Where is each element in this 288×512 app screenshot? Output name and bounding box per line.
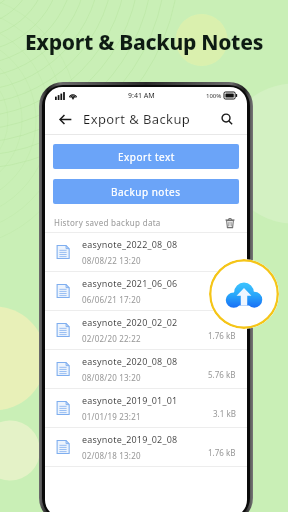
staticText: 02/08/18 13:20 [82,450,141,461]
button[interactable]: easynote_2019_01_01 [45,389,247,427]
staticText: 08/08/20 13:20 [82,372,141,383]
button[interactable]: Back [55,109,75,129]
button[interactable]: easynote_2020_08_08 [45,350,247,388]
staticText: 5.76 kB [208,369,236,380]
button[interactable]: easynote_2020_02_02 [45,311,247,349]
button[interactable]: Export text [53,144,239,169]
staticText: easynote_2020_02_02 [82,316,178,328]
staticText: 06/06/21 17:20 [82,294,141,305]
staticText: Export text [118,150,175,164]
button[interactable]: Search [217,109,237,129]
staticText: History saved backup data [54,217,161,228]
button[interactable]: Backup notes [53,179,239,204]
button[interactable]: Backup to cloud [209,259,279,329]
staticText: easynote_2021_06_06 [82,277,178,289]
staticText: 100% [206,92,222,100]
staticText: easynote_2019_01_01 [82,394,178,406]
staticText: 9:41 AM [128,91,155,101]
button[interactable]: easynote_2021_06_06 [45,272,247,310]
staticText: 1.76 kB [208,447,236,458]
button[interactable]: Delete all [222,215,238,231]
staticText: 1.76 kB [208,330,236,341]
staticText: Backup notes [111,185,181,199]
staticText: 02/02/20 22:22 [82,333,141,344]
staticText: easynote_2022_08_08 [82,238,178,250]
staticText: Export & Backup Notes [0,28,288,57]
staticText: easynote_2020_08_08 [82,355,178,367]
staticText: Export & Backup [83,110,191,128]
staticText: 3.1 kB [213,408,236,419]
staticText: 01/01/19 23:21 [82,411,141,422]
staticText: 08/08/22 13:20 [82,255,141,266]
staticText: easynote_2019_02_08 [82,433,178,445]
button[interactable]: easynote_2022_08_08 [45,233,247,271]
button[interactable]: easynote_2019_02_08 [45,428,247,466]
